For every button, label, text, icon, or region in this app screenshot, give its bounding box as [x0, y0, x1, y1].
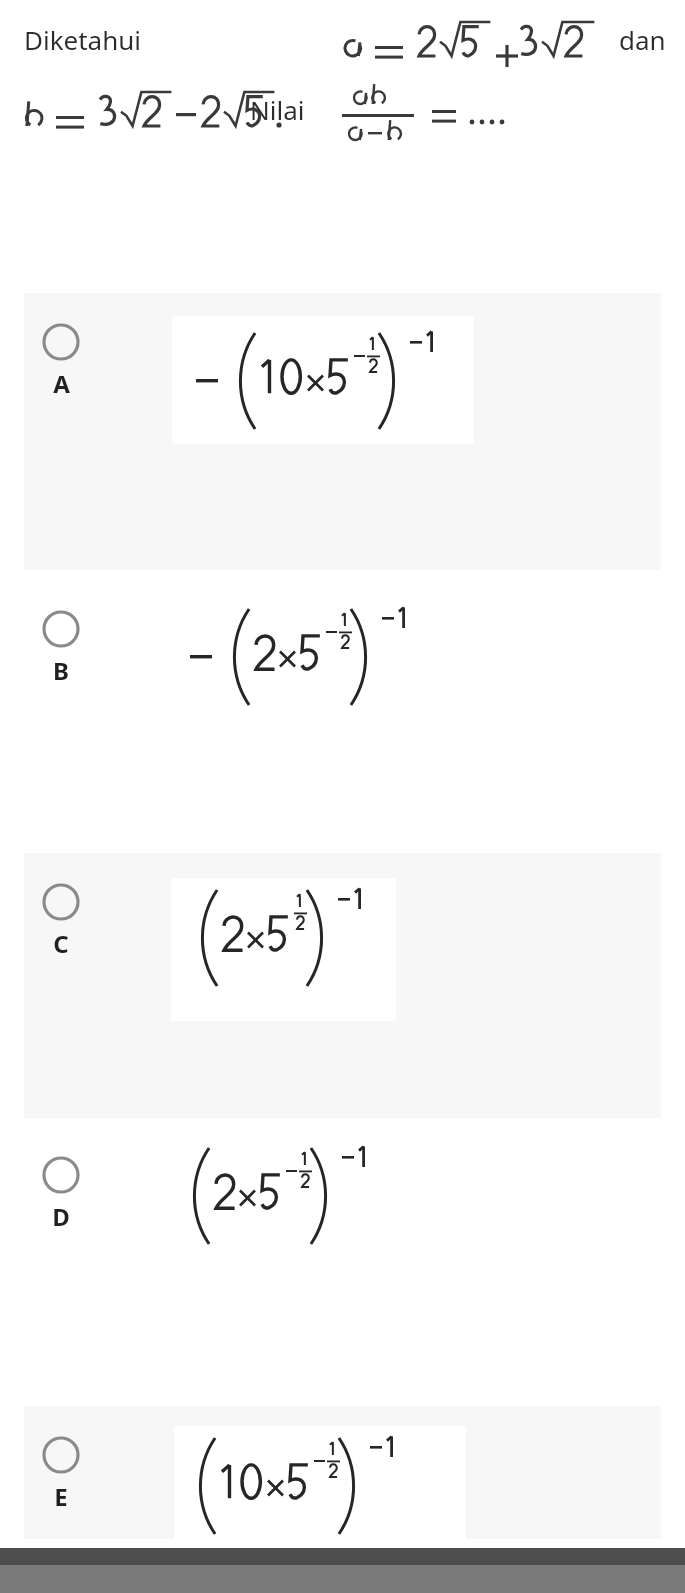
button[interactable]: A — [24, 293, 661, 570]
staticText: A — [53, 367, 70, 400]
button[interactable]: D — [24, 1126, 661, 1406]
staticText: E — [54, 1480, 68, 1513]
button[interactable]: E — [24, 1406, 661, 1539]
staticText: B — [53, 654, 69, 687]
button[interactable]: B — [24, 580, 661, 853]
button[interactable]: C — [24, 853, 661, 1118]
staticText: dan — [619, 22, 666, 57]
staticText: C — [53, 927, 69, 960]
staticText: D — [52, 1200, 70, 1233]
staticText: Diketahui — [24, 22, 142, 57]
staticText: Nilai — [250, 92, 305, 127]
